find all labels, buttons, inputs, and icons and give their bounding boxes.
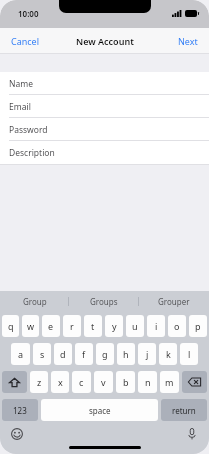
button[interactable]: f [75, 343, 93, 365]
staticText: Name [9, 78, 33, 90]
button[interactable]: z [30, 371, 48, 393]
staticText: n [145, 376, 151, 388]
staticText: Groups [90, 296, 118, 307]
button[interactable]: w [22, 315, 39, 337]
button[interactable]: Name [0, 72, 209, 95]
staticText: Password [9, 124, 48, 136]
staticText: k [166, 348, 171, 360]
staticText: d [60, 348, 66, 360]
staticText: y [112, 320, 117, 332]
button[interactable]: y [105, 315, 123, 337]
staticText: i [155, 320, 158, 332]
staticText: s [40, 348, 45, 360]
button[interactable]: q [2, 315, 19, 337]
button[interactable]: Emoji [10, 427, 24, 441]
staticText: a [18, 348, 24, 360]
staticText: q [8, 320, 14, 332]
button[interactable]: Backspace [182, 371, 207, 393]
staticText: r [70, 320, 74, 332]
staticText: m [165, 376, 174, 388]
button[interactable]: p [189, 315, 207, 337]
button[interactable]: d [54, 343, 72, 365]
staticText: g [102, 348, 108, 360]
staticText: 123 [13, 405, 27, 416]
staticText: b [123, 376, 129, 388]
button[interactable]: h [117, 343, 135, 365]
staticText: x [58, 376, 63, 388]
button[interactable]: b [116, 371, 135, 393]
button[interactable]: Cancel [0, 30, 51, 52]
button[interactable]: Groups [69, 291, 139, 311]
button[interactable]: o [168, 315, 186, 337]
button[interactable]: l [180, 343, 198, 365]
staticText: c [79, 376, 84, 388]
staticText: Group [23, 296, 47, 307]
staticText: j [146, 348, 149, 360]
button[interactable]: return [161, 399, 207, 421]
staticText: New Account [76, 35, 134, 47]
button[interactable]: u [126, 315, 144, 337]
button[interactable]: i [147, 315, 165, 337]
button[interactable]: x [51, 371, 69, 393]
staticText: 10:00 [18, 8, 39, 19]
button[interactable]: k [159, 343, 177, 365]
staticText: o [174, 320, 180, 332]
button[interactable]: Grouper [139, 291, 209, 311]
button[interactable]: r [63, 315, 81, 337]
button[interactable]: Password [0, 118, 209, 141]
button[interactable]: g [96, 343, 114, 365]
button[interactable]: Email [0, 95, 209, 118]
staticText: Description [9, 147, 55, 159]
staticText: l [188, 348, 191, 360]
button[interactable]: Dictation [185, 427, 199, 441]
button[interactable]: n [138, 371, 157, 393]
staticText: u [132, 320, 138, 332]
button[interactable]: j [138, 343, 156, 365]
staticText: e [48, 320, 54, 332]
button[interactable]: a [11, 343, 30, 365]
staticText: h [123, 348, 129, 360]
button[interactable]: m [160, 371, 179, 393]
staticText: Email [9, 101, 31, 113]
button[interactable]: Next [167, 30, 209, 52]
button[interactable]: space [41, 399, 158, 421]
button[interactable]: e [42, 315, 60, 337]
staticText: Next [178, 35, 198, 47]
staticText: z [37, 376, 42, 388]
button[interactable]: Group [0, 291, 69, 311]
button[interactable]: 123 [2, 399, 38, 421]
button[interactable]: s [33, 343, 51, 365]
button[interactable]: Description [0, 141, 209, 164]
staticText: return [172, 405, 196, 416]
staticText: p [195, 320, 201, 332]
staticText: Grouper [158, 296, 190, 307]
staticText: f [82, 348, 86, 360]
button[interactable]: Shift [2, 371, 27, 393]
button[interactable]: t [84, 315, 102, 337]
staticText: t [91, 320, 95, 332]
staticText: w [27, 320, 35, 332]
staticText: space [89, 405, 111, 416]
staticText: Cancel [11, 35, 40, 47]
button[interactable]: c [72, 371, 91, 393]
staticText: v [101, 376, 106, 388]
button[interactable]: v [94, 371, 113, 393]
